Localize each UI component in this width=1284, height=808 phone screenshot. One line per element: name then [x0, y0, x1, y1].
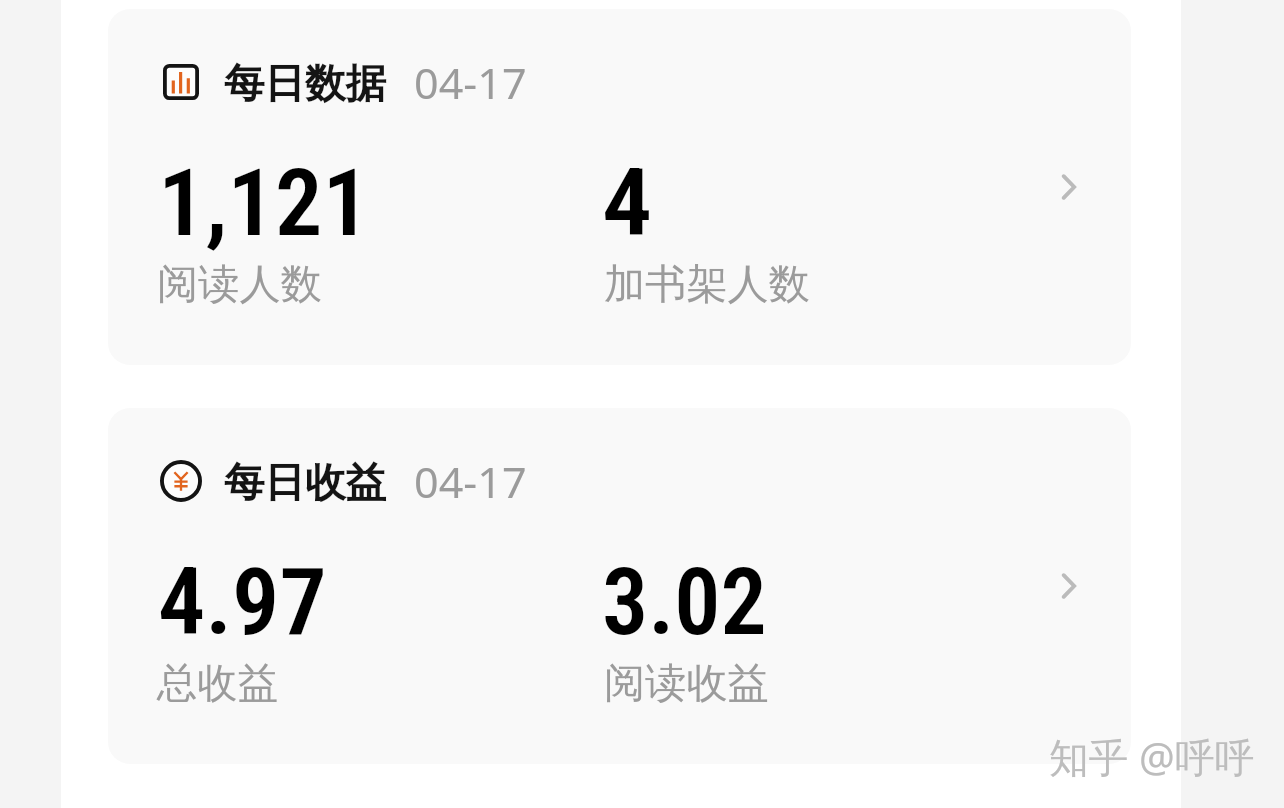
staticText: 3.02 — [602, 548, 767, 657]
staticText: 4.97 — [158, 548, 327, 657]
staticText: 阅读收益 — [604, 658, 769, 710]
staticText: 阅读人数 — [157, 259, 322, 311]
button[interactable]: 查看详情 — [1038, 556, 1098, 616]
button[interactable]: 查看详情 — [1038, 157, 1098, 217]
button[interactable]: 每日数据 — [108, 9, 1131, 365]
button[interactable]: 每日收益 — [108, 408, 1131, 764]
staticText: 每日收益 — [224, 457, 386, 507]
staticText: 04-17 — [414, 453, 527, 510]
staticText: 4 — [602, 149, 652, 258]
staticText: 每日数据 — [224, 58, 386, 108]
staticText: 04-17 — [414, 54, 527, 111]
staticText: 总收益 — [157, 658, 278, 710]
staticText: 加书架人数 — [604, 259, 810, 311]
staticText: 1,121 — [158, 149, 370, 258]
staticText: 知乎 @呼呼 — [1049, 729, 1255, 784]
